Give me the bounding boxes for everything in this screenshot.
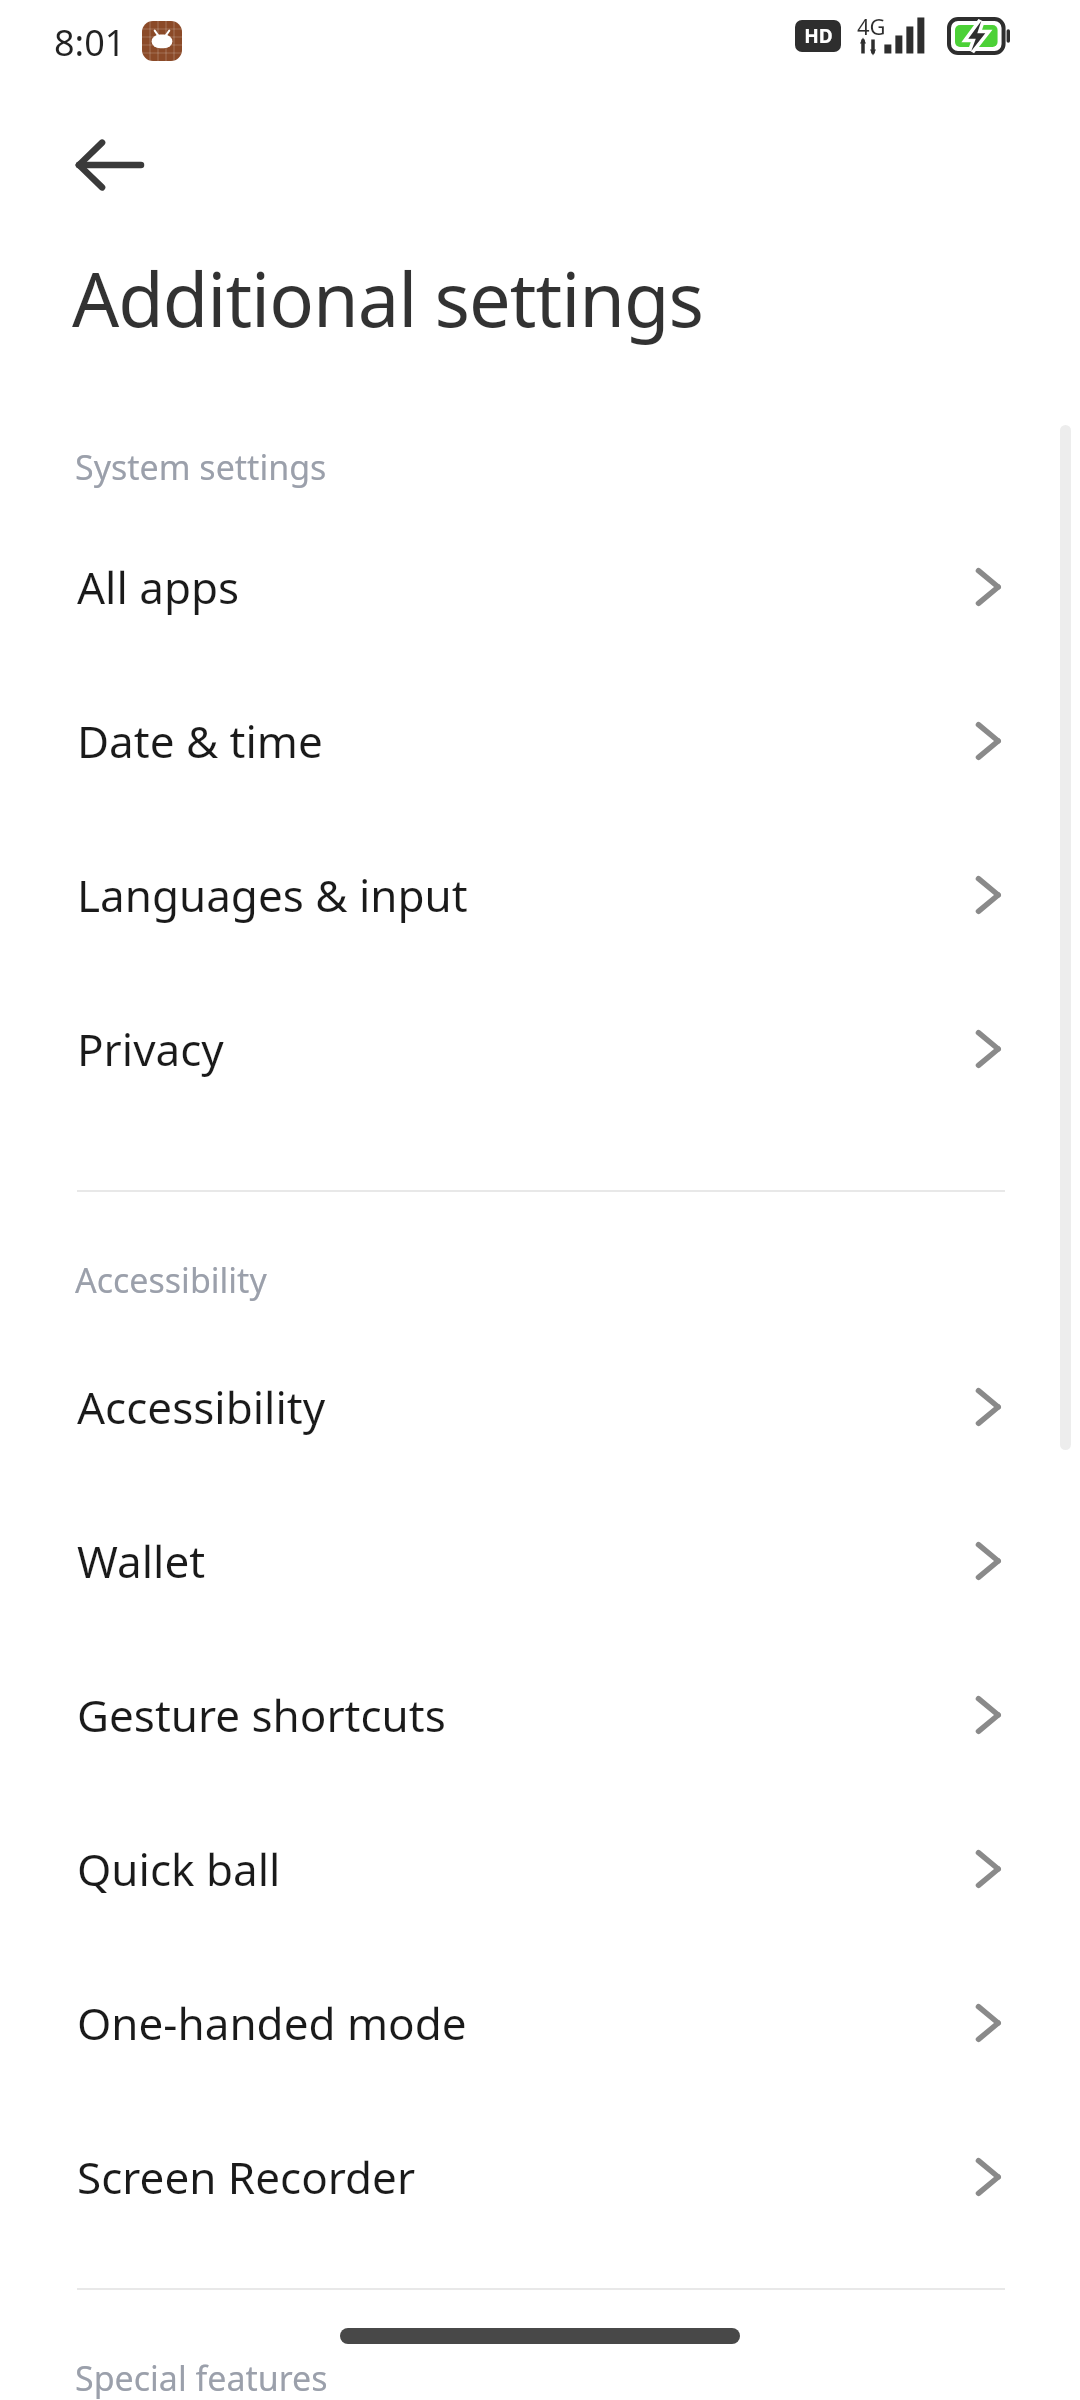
staticText: Accessibility (75, 1257, 267, 1303)
staticText: Wallet (77, 1531, 971, 1591)
button[interactable]: Accessibility (0, 1330, 1080, 1484)
staticText: Additional settings (72, 248, 703, 349)
staticText: Privacy (77, 1019, 971, 1079)
button[interactable]: Back (52, 110, 168, 220)
button[interactable]: Languages & input (0, 818, 1080, 972)
staticText: Languages & input (77, 865, 971, 925)
staticText: Date & time (77, 711, 971, 771)
button[interactable]: Screen Recorder (0, 2100, 1080, 2254)
staticText: 4G (857, 11, 886, 41)
staticText: Quick ball (77, 1839, 971, 1899)
staticText: 8:01 (54, 18, 126, 67)
button[interactable]: Privacy (0, 972, 1080, 1126)
staticText: Gesture shortcuts (77, 1685, 971, 1745)
button[interactable]: Quick ball (0, 1792, 1080, 1946)
button[interactable]: Date & time (0, 664, 1080, 818)
staticText: System settings (75, 444, 327, 490)
button[interactable]: Gesture shortcuts (0, 1638, 1080, 1792)
staticText: Screen Recorder (77, 2147, 971, 2207)
staticText: One-handed mode (77, 1993, 971, 2053)
button[interactable]: One-handed mode (0, 1946, 1080, 2100)
staticText: Special features (75, 2355, 328, 2400)
staticText: HD (804, 23, 833, 49)
button[interactable]: Wallet (0, 1484, 1080, 1638)
button[interactable]: All apps (0, 510, 1080, 664)
staticText: All apps (77, 557, 971, 617)
staticText: Accessibility (77, 1377, 971, 1437)
